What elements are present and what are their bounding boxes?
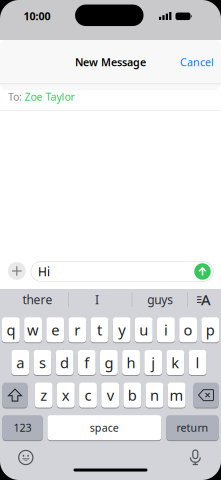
button[interactable]: return: [166, 415, 218, 441]
button[interactable]: u: [135, 317, 153, 343]
staticText: b: [128, 385, 137, 405]
button[interactable]: v: [101, 382, 119, 408]
staticText: e: [51, 320, 59, 340]
staticText: g: [104, 353, 113, 372]
button[interactable]: Keyboard language: [197, 293, 211, 305]
staticText: h: [127, 353, 136, 372]
button[interactable]: Cancel: [180, 55, 214, 69]
button[interactable]: Dictation: [189, 450, 202, 465]
button[interactable]: b: [123, 382, 141, 408]
button[interactable]: p: [201, 317, 219, 343]
staticText: 123: [14, 421, 32, 435]
staticText: I: [95, 291, 99, 307]
staticText: k: [171, 353, 179, 372]
button[interactable]: m: [168, 382, 185, 408]
staticText: d: [60, 353, 69, 372]
button[interactable]: 123: [2, 415, 43, 441]
staticText: Cancel: [180, 55, 214, 69]
button[interactable]: z: [35, 382, 53, 408]
button[interactable]: Send: [194, 263, 211, 280]
staticText: return: [176, 421, 208, 435]
staticText: guys: [147, 291, 173, 307]
staticText: m: [170, 385, 184, 405]
button[interactable]: n: [146, 382, 163, 408]
button[interactable]: t: [91, 317, 108, 343]
staticText: t: [97, 320, 102, 340]
button[interactable]: g: [100, 349, 118, 375]
button[interactable]: x: [57, 382, 75, 408]
staticText: w: [27, 320, 39, 340]
button[interactable]: a: [11, 349, 29, 375]
button[interactable]: j: [144, 349, 162, 375]
staticText: space: [90, 421, 119, 435]
staticText: p: [206, 320, 215, 340]
button[interactable]: h: [122, 349, 140, 375]
staticText: r: [74, 320, 80, 340]
staticText: x: [62, 385, 70, 405]
staticText: v: [107, 385, 114, 405]
button[interactable]: I: [95, 291, 99, 307]
button[interactable]: k: [166, 349, 184, 375]
button[interactable]: space: [47, 415, 161, 441]
staticText: u: [139, 320, 148, 340]
staticText: j: [151, 353, 155, 372]
staticText: y: [118, 320, 125, 340]
staticText: s: [39, 353, 46, 372]
button[interactable]: s: [33, 349, 51, 375]
button[interactable]: Delete: [193, 382, 218, 408]
button[interactable]: l: [189, 349, 206, 375]
staticText: Hi: [38, 263, 50, 279]
button[interactable]: Shift: [2, 382, 27, 408]
staticText: i: [164, 320, 168, 340]
staticText: c: [84, 385, 91, 405]
staticText: there: [23, 291, 53, 307]
button[interactable]: d: [56, 349, 73, 375]
button[interactable]: w: [24, 317, 42, 343]
staticText: A: [201, 290, 211, 309]
staticText: Zoe Taylor: [24, 89, 74, 104]
button[interactable]: guys: [147, 291, 173, 307]
button[interactable]: r: [68, 317, 86, 343]
button[interactable]: i: [157, 317, 175, 343]
button[interactable]: there: [23, 291, 53, 307]
staticText: o: [184, 320, 193, 340]
staticText: To:: [8, 89, 22, 104]
button[interactable]: c: [79, 382, 97, 408]
staticText: 10:00: [23, 9, 50, 23]
button[interactable]: Emoji: [19, 450, 33, 465]
staticText: f: [84, 353, 89, 372]
staticText: l: [195, 353, 199, 372]
button[interactable]: o: [179, 317, 197, 343]
button[interactable]: f: [78, 349, 96, 375]
button[interactable]: e: [46, 317, 64, 343]
staticText: z: [40, 385, 47, 405]
staticText: n: [150, 385, 159, 405]
button[interactable]: Apps: [8, 262, 26, 280]
staticText: q: [6, 320, 15, 340]
staticText: a: [16, 353, 24, 372]
button[interactable]: q: [2, 317, 20, 343]
button[interactable]: y: [113, 317, 131, 343]
staticText: New Message: [75, 55, 146, 69]
